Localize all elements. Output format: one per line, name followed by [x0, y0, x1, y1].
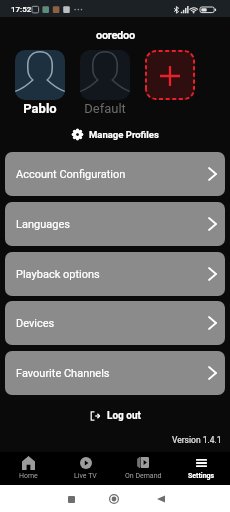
staticText: Languages	[16, 218, 70, 231]
button[interactable]: Favourite Channels	[5, 351, 225, 395]
button[interactable]: Add profile	[145, 50, 195, 100]
staticText: Favourite Channels	[16, 367, 110, 380]
button[interactable]: Manage Profiles	[72, 129, 159, 140]
button[interactable]: Settings	[172, 452, 230, 485]
staticText: Devices	[16, 317, 55, 330]
button[interactable]: Account Configuration	[5, 152, 225, 196]
staticText: Version 1.4.1	[172, 435, 222, 445]
button[interactable]: Profile	[15, 50, 65, 100]
button[interactable]: Log out	[90, 410, 141, 422]
staticText: Account Configuration	[16, 168, 126, 181]
staticText: Home	[19, 472, 38, 480]
staticText: Settings	[188, 472, 215, 480]
staticText: Log out	[107, 410, 141, 422]
button[interactable]: Home	[101, 486, 127, 512]
button[interactable]: Recents	[58, 486, 84, 512]
staticText: Default	[84, 101, 126, 116]
button[interactable]: Languages	[5, 202, 225, 246]
staticText: 17:52	[11, 5, 32, 14]
button[interactable]: Home	[0, 452, 57, 485]
staticText: Live TV	[74, 472, 97, 480]
button[interactable]: Profile	[80, 50, 130, 100]
button[interactable]: Playback options	[5, 252, 225, 296]
staticText: ooredoo	[96, 29, 135, 42]
button[interactable]: Live TV	[57, 452, 114, 485]
staticText: Playback options	[16, 268, 100, 281]
button[interactable]: Back	[148, 486, 174, 512]
staticText: Pablo	[23, 101, 57, 116]
button[interactable]: Devices	[5, 301, 225, 345]
staticText: Manage Profiles	[89, 129, 159, 140]
staticText: On Demand	[125, 472, 162, 480]
button[interactable]: On Demand	[114, 452, 172, 485]
